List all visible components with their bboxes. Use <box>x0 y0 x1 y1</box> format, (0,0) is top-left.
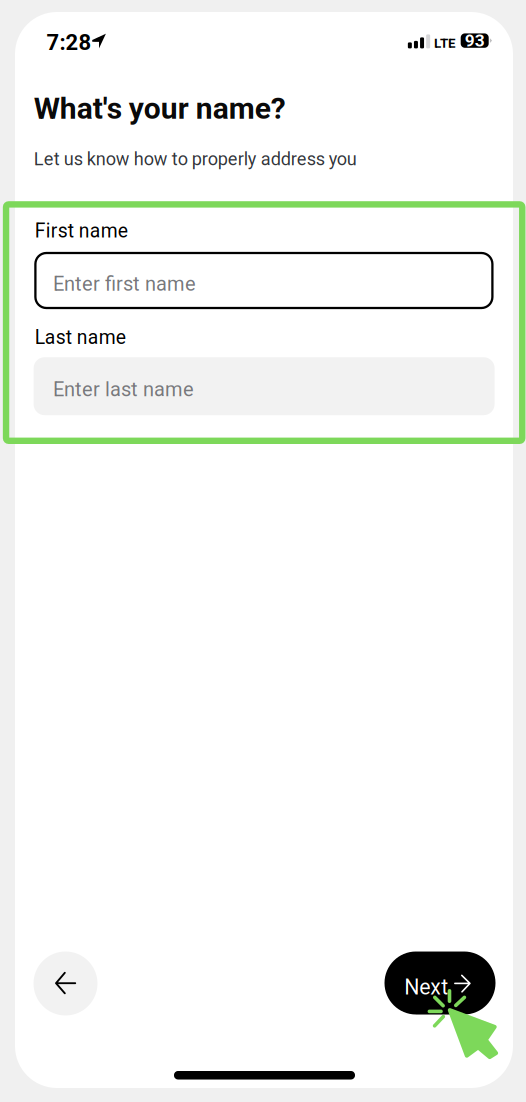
staticText: 7:28 <box>46 29 91 55</box>
staticText: Next <box>404 975 448 1000</box>
staticText: Enter last name <box>53 378 194 401</box>
staticText: Let us know how to properly address you <box>34 148 357 170</box>
staticText: 93 <box>465 30 485 51</box>
staticText: What's your name? <box>34 91 286 126</box>
button[interactable]: Next <box>384 951 495 1014</box>
staticText: First name <box>35 219 128 242</box>
button[interactable]: Enter last name <box>34 357 495 415</box>
staticText: Last name <box>35 326 126 349</box>
button[interactable]: Enter first name <box>34 252 493 309</box>
button[interactable]: Back <box>33 951 97 1015</box>
staticText: Enter first name <box>53 272 196 296</box>
staticText: LTE <box>434 35 456 51</box>
